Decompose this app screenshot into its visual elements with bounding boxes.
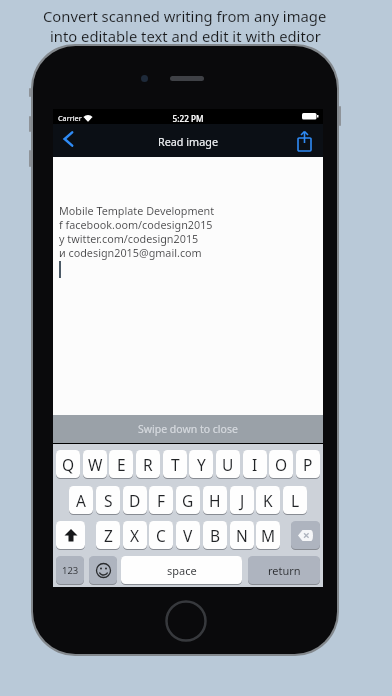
staticText: Read image xyxy=(158,134,218,149)
staticText: 5:22 PM xyxy=(53,113,323,124)
staticText: L xyxy=(291,490,300,511)
button[interactable] xyxy=(56,521,85,549)
button[interactable]: D xyxy=(123,486,147,514)
button[interactable]: return xyxy=(248,556,320,584)
button[interactable]: A xyxy=(69,486,93,514)
button[interactable]: N xyxy=(230,521,254,549)
button[interactable]: P xyxy=(296,450,320,478)
button[interactable]: E xyxy=(109,450,133,478)
staticText: R xyxy=(143,454,153,475)
button[interactable]: Read image xyxy=(53,124,323,158)
button[interactable]: Z xyxy=(96,521,120,549)
button[interactable]: T xyxy=(163,450,187,478)
staticText: space xyxy=(167,563,197,578)
staticText: O xyxy=(275,454,288,475)
staticText: Carrier xyxy=(58,113,82,123)
button[interactable]: H xyxy=(203,486,227,514)
staticText: U xyxy=(222,454,234,475)
button[interactable]: F xyxy=(149,486,173,514)
button[interactable]: Q xyxy=(56,450,80,478)
staticText: M xyxy=(261,525,276,546)
staticText: I xyxy=(252,454,258,475)
button[interactable]: B xyxy=(203,521,227,549)
button[interactable]: O xyxy=(269,450,293,478)
staticText: 123 xyxy=(62,564,79,577)
button[interactable] xyxy=(297,131,313,152)
button[interactable]: G xyxy=(176,486,200,514)
staticText: G xyxy=(182,490,194,511)
staticText: B xyxy=(210,525,221,546)
staticText: D xyxy=(129,490,141,511)
staticText: return xyxy=(268,563,301,578)
staticText: Z xyxy=(104,525,113,546)
staticText: Q xyxy=(62,454,75,475)
staticText: C xyxy=(156,525,166,546)
button[interactable]: Y xyxy=(189,450,213,478)
staticText: Mobile Template Development f facebook.o… xyxy=(59,203,215,260)
staticText: A xyxy=(76,490,86,511)
staticText: T xyxy=(171,454,180,475)
button[interactable]: space xyxy=(121,556,242,584)
staticText: P xyxy=(303,454,313,475)
button[interactable]: S xyxy=(96,486,120,514)
staticText: H xyxy=(209,490,221,511)
staticText: Convert scanned writing from any image xyxy=(43,6,327,26)
staticText: E xyxy=(117,454,126,475)
button[interactable]: V xyxy=(176,521,200,549)
button[interactable]: I xyxy=(243,450,267,478)
button[interactable]: X xyxy=(123,521,147,549)
button[interactable]: M xyxy=(256,521,280,549)
staticText: X xyxy=(130,525,140,546)
button[interactable] xyxy=(89,556,117,584)
staticText: Y xyxy=(197,454,206,475)
button[interactable]: K xyxy=(256,486,280,514)
button[interactable]: W xyxy=(83,450,107,478)
staticText: S xyxy=(104,490,113,511)
button[interactable]: L xyxy=(283,486,307,514)
staticText: Swipe down to close xyxy=(138,422,238,436)
staticText: V xyxy=(183,525,193,546)
button[interactable]: Swipe down to close xyxy=(53,415,323,443)
staticText: into editable text and edit it with edit… xyxy=(50,26,321,46)
staticText: N xyxy=(236,525,248,546)
staticText: F xyxy=(157,490,166,511)
button[interactable]: J xyxy=(230,486,254,514)
button[interactable]: C xyxy=(149,521,173,549)
staticText: W xyxy=(88,454,103,475)
button[interactable]: R xyxy=(136,450,160,478)
button[interactable]: 123 xyxy=(56,556,84,584)
button[interactable] xyxy=(291,521,320,549)
button[interactable]: U xyxy=(216,450,240,478)
staticText: J xyxy=(240,490,245,511)
staticText: K xyxy=(263,490,273,511)
